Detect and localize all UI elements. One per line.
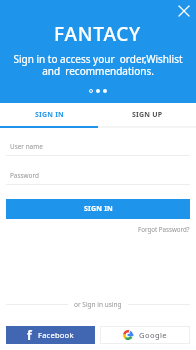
staticText: FANTACY (54, 21, 142, 47)
button[interactable]: SIGN IN (0, 103, 98, 126)
staticText: Google (139, 330, 168, 340)
button[interactable]: SIGN UP (98, 103, 196, 126)
button[interactable]: User name (6, 137, 190, 156)
button[interactable]: Close (174, 1, 194, 21)
staticText: SIGN UP (132, 110, 163, 120)
staticText: SIGN IN (35, 110, 64, 120)
staticText: Forgot Password? (138, 225, 190, 233)
button[interactable]: Password (6, 166, 190, 185)
staticText: f (27, 327, 32, 343)
button[interactable]: SIGN IN (6, 199, 190, 219)
staticText: SIGN IN (84, 204, 113, 214)
staticText: or Sign in using (74, 300, 122, 309)
button[interactable]: Forgot Password? (138, 225, 190, 233)
staticText: Sign in to access your order,Wishlist an… (13, 52, 183, 78)
staticText: Facebook (38, 330, 74, 340)
button[interactable]: Google (100, 326, 190, 344)
staticText: Password (10, 171, 39, 180)
staticText: User name (10, 142, 43, 151)
button[interactable]: f (6, 326, 95, 344)
